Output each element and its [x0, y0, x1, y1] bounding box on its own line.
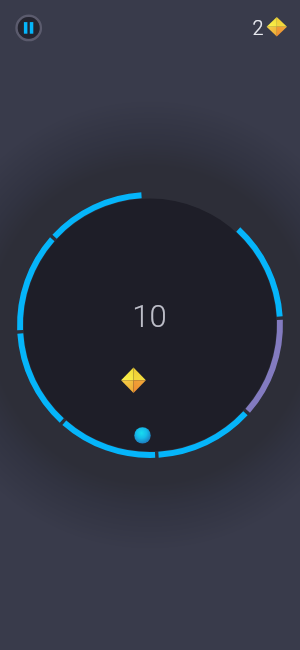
- staticText: 10: [132, 298, 167, 334]
- button[interactable]: Pause: [10, 10, 46, 46]
- staticText: 2: [252, 16, 264, 39]
